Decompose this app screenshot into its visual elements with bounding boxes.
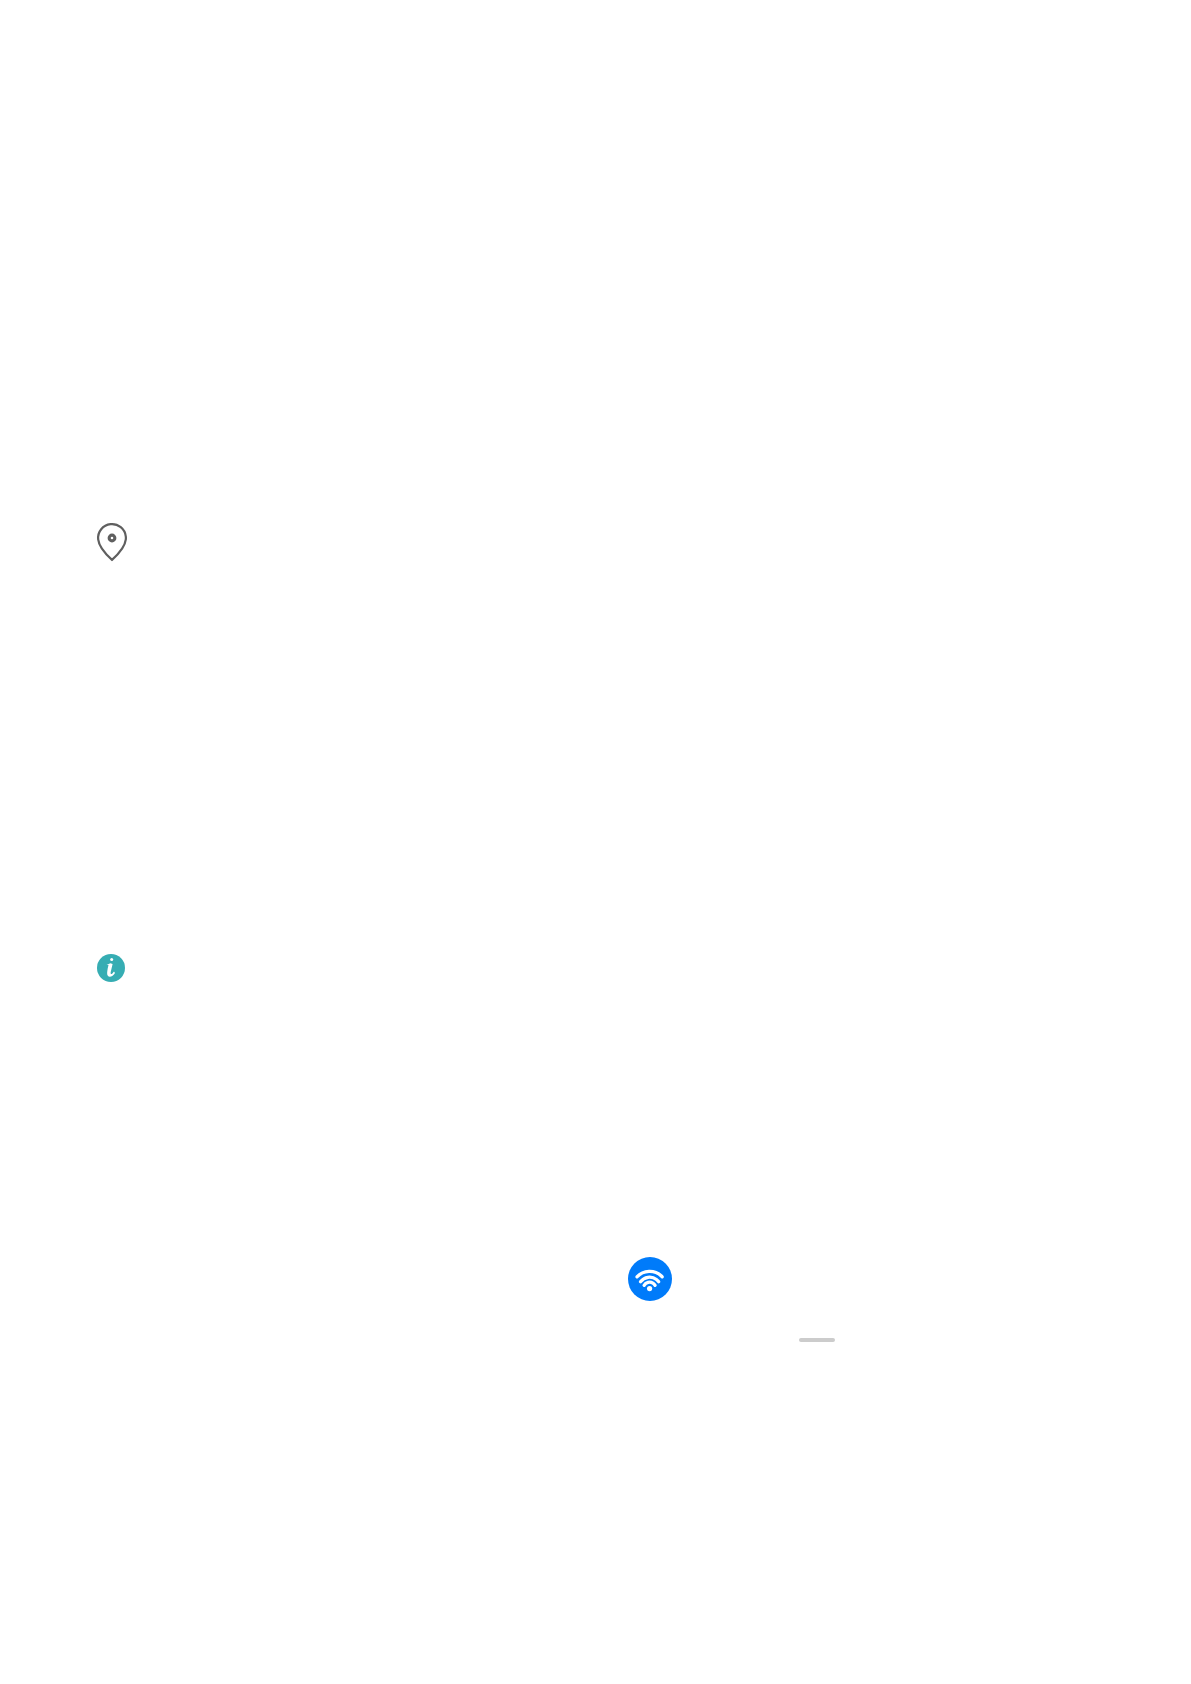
button[interactable]: Location marker [97, 523, 127, 561]
button[interactable]: Information [97, 954, 125, 982]
button[interactable]: Wi-Fi [628, 1257, 672, 1301]
